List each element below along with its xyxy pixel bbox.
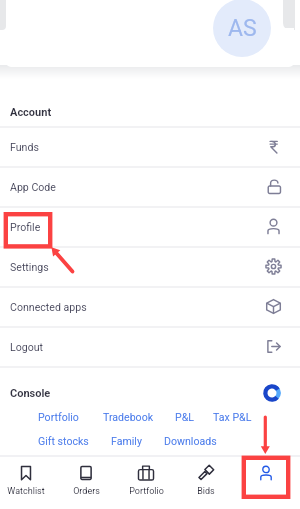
button[interactable]: Funds <box>0 127 300 166</box>
button[interactable]: Profile <box>236 457 296 509</box>
staticText: Watchlist <box>7 486 45 497</box>
button[interactable]: Bids <box>176 457 236 509</box>
staticText: Profile <box>10 221 41 233</box>
staticText: Tradebook <box>103 411 154 423</box>
staticText: Logout <box>10 341 44 353</box>
staticText: Bids <box>197 486 215 497</box>
staticText: Downloads <box>164 435 217 447</box>
staticText: P&L <box>175 411 194 423</box>
staticText: App Code <box>10 181 56 193</box>
button[interactable]: Logout <box>0 327 300 366</box>
button[interactable]: Downloads <box>164 433 217 448</box>
staticText: Family <box>111 435 142 447</box>
staticText: Account <box>10 106 52 119</box>
staticText: Portfolio <box>129 486 164 497</box>
button[interactable]: Tax P&L <box>213 409 252 424</box>
staticText: Tax P&L <box>213 411 252 423</box>
button[interactable]: Portfolio <box>116 457 176 509</box>
staticText: AS <box>228 15 257 42</box>
staticText: Gift stocks <box>38 435 89 447</box>
button[interactable]: Family <box>111 433 142 448</box>
button[interactable]: Gift stocks <box>38 433 89 448</box>
staticText: Console <box>10 387 51 400</box>
button[interactable]: Portfolio <box>38 409 79 424</box>
button[interactable]: Settings <box>0 247 300 286</box>
button[interactable]: Watchlist <box>0 457 56 509</box>
button[interactable]: Orders <box>56 457 116 509</box>
staticText: Connected apps <box>10 301 87 313</box>
button[interactable]: Profile <box>0 207 300 246</box>
button[interactable]: Connected apps <box>0 287 300 326</box>
button[interactable]: P&L <box>175 409 194 424</box>
staticText: Portfolio <box>38 411 79 423</box>
button[interactable]: Tradebook <box>103 409 154 424</box>
staticText: Funds <box>10 141 39 153</box>
button[interactable]: Console <box>0 379 300 407</box>
button[interactable]: Account avatar <box>213 0 271 57</box>
staticText: Orders <box>73 486 100 497</box>
button[interactable]: App Code <box>0 167 300 206</box>
staticText: Settings <box>10 261 49 273</box>
